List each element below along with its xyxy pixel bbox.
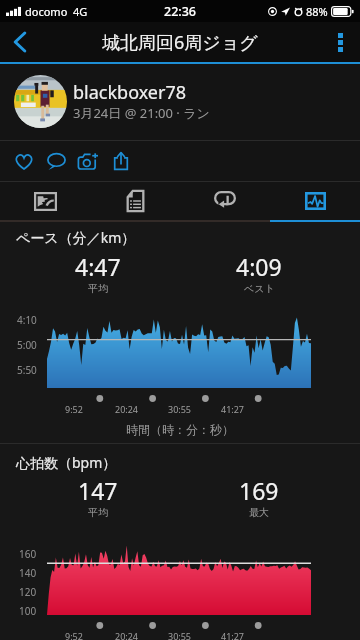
staticText: 4:09 bbox=[236, 251, 282, 282]
button[interactable]: Like bbox=[8, 141, 40, 181]
staticText: 4:10 bbox=[17, 313, 37, 327]
button[interactable]: Laps bbox=[180, 182, 270, 220]
staticText: 9:52 bbox=[65, 403, 83, 415]
staticText: 169 bbox=[239, 475, 279, 506]
button[interactable]: Add photo bbox=[72, 141, 104, 181]
staticText: 9:52 bbox=[65, 630, 83, 640]
staticText: 30:55 bbox=[168, 403, 192, 415]
staticText: 20:24 bbox=[115, 630, 139, 640]
staticText: 140 bbox=[19, 566, 37, 580]
staticText: 4:47 bbox=[75, 251, 121, 282]
staticText: 88% bbox=[306, 4, 328, 19]
staticText: 120 bbox=[19, 585, 37, 599]
staticText: 最大 bbox=[249, 506, 269, 519]
staticText: 4G bbox=[73, 4, 88, 19]
staticText: 5:50 bbox=[17, 363, 37, 377]
button[interactable]: Charts bbox=[270, 182, 360, 220]
button[interactable]: More options bbox=[320, 22, 360, 62]
button[interactable]: Share bbox=[105, 141, 137, 181]
staticText: 心拍数（bpm） bbox=[16, 453, 117, 472]
staticText: 41:27 bbox=[221, 630, 245, 640]
staticText: 30:55 bbox=[168, 630, 192, 640]
staticText: 20:24 bbox=[115, 403, 139, 415]
button[interactable]: Details bbox=[90, 182, 180, 220]
button[interactable]: Back bbox=[0, 22, 40, 62]
staticText: 22:36 bbox=[164, 3, 197, 20]
button[interactable]: Comment bbox=[40, 141, 72, 181]
button[interactable]: blackboxer78 bbox=[0, 64, 360, 140]
staticText: 5:00 bbox=[17, 338, 37, 352]
staticText: 100 bbox=[19, 604, 37, 618]
staticText: 城北周回6周ジョグ bbox=[102, 30, 258, 55]
staticText: ペース（分／km） bbox=[16, 228, 136, 247]
staticText: 3月24日 @ 21:00 · ラン bbox=[73, 104, 210, 122]
staticText: docomo bbox=[25, 4, 68, 19]
staticText: 平均 bbox=[88, 282, 108, 295]
staticText: 41:27 bbox=[221, 403, 245, 415]
staticText: blackboxer78 bbox=[73, 80, 187, 105]
staticText: 160 bbox=[19, 547, 37, 561]
staticText: 時間（時：分：秒） bbox=[0, 422, 360, 437]
staticText: 147 bbox=[78, 475, 118, 506]
staticText: ベスト bbox=[244, 282, 275, 295]
button[interactable]: Map bbox=[0, 182, 90, 220]
staticText: 平均 bbox=[88, 506, 108, 519]
